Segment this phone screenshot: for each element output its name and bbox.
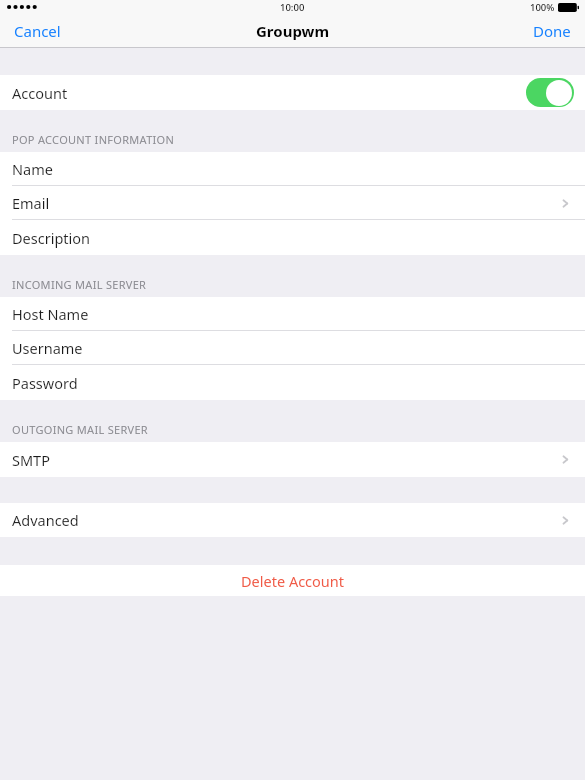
staticText: Advanced [12,510,79,530]
staticText: Password [12,373,78,393]
staticText: INCOMING MAIL SERVER [12,277,147,292]
button[interactable]: Account [0,75,585,110]
staticText: 100% [530,1,555,14]
staticText: Groupwm [256,21,330,41]
button[interactable]: Username [0,331,585,365]
staticText: Name [12,159,53,179]
button[interactable]: Done [519,14,585,48]
button[interactable]: Name [0,152,585,186]
button[interactable]: Cancel [0,14,75,48]
staticText: POP ACCOUNT INFORMATION [12,132,175,147]
staticText: Account [12,83,68,103]
other: Open [559,453,572,466]
other: Open [559,514,572,527]
staticText: Done [533,21,571,41]
button[interactable]: Delete Account [0,565,585,596]
staticText: Cancel [14,21,61,41]
staticText: OUTGOING MAIL SERVER [12,422,148,437]
staticText: Email [12,193,50,213]
staticText: Host Name [12,304,89,324]
button[interactable]: SMTP [0,442,585,477]
staticText: SMTP [12,450,50,470]
button[interactable]: Description [0,220,585,255]
button[interactable]: Host Name [0,297,585,331]
other: Open [559,197,572,210]
button[interactable]: Password [0,365,585,400]
staticText: 10:00 [280,1,305,14]
button[interactable]: Email [0,186,585,220]
staticText: Description [12,228,91,248]
staticText: Delete Account [241,571,344,591]
staticText: Username [12,338,83,358]
button[interactable]: Account on [526,78,574,107]
button[interactable]: Advanced [0,503,585,537]
